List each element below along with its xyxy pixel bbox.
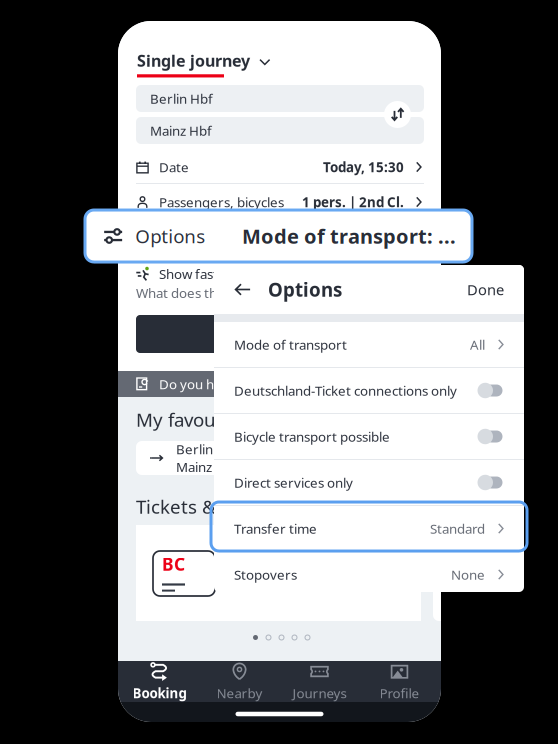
staticText: Profile — [379, 684, 419, 702]
button[interactable]: Options — [118, 221, 441, 253]
button[interactable]: Search — [136, 315, 424, 353]
button[interactable]: Back — [231, 277, 255, 301]
staticText: Berlin Hbf — [150, 90, 213, 107]
button[interactable]: Mode of transport — [214, 322, 524, 367]
staticText: Nearby — [216, 684, 262, 702]
staticText: Show faster connections — [159, 265, 309, 283]
button[interactable]: Stopovers — [214, 552, 524, 597]
staticText: Do you have a BahnCard? — [159, 375, 315, 393]
button[interactable]: Bicycle transport possible — [214, 414, 524, 459]
button[interactable]: Booking — [119, 661, 199, 702]
staticText: Mode of transport: ... — [242, 223, 456, 249]
staticText: Search — [255, 324, 305, 344]
staticText: Done — [467, 280, 504, 299]
staticText: Today, 15:30 — [323, 158, 404, 176]
button[interactable]: Do you have a BahnCard? — [118, 371, 441, 397]
button[interactable]: Show faster connections — [136, 265, 309, 283]
button[interactable]: Nearby — [199, 661, 279, 702]
staticText: Mode of transport: ... — [265, 228, 404, 246]
button[interactable]: Mainz Hbf — [136, 117, 424, 144]
staticText: Transfer time — [234, 520, 317, 537]
staticText: Deutschland-Ticket connections only — [234, 382, 457, 399]
staticText: Mode of transport — [234, 336, 347, 353]
staticText: Single journey — [137, 50, 250, 71]
staticText: Booking — [132, 684, 186, 702]
staticText: Passengers, bicycles — [159, 193, 284, 211]
staticText: Mainz Hbf — [150, 122, 212, 139]
button[interactable]: What does that mean? — [136, 284, 273, 302]
staticText: Stopovers — [234, 566, 297, 583]
button[interactable]: Options — [85, 210, 472, 262]
staticText: BC — [162, 552, 185, 575]
button[interactable]: Profile — [359, 661, 439, 702]
staticText: Journeys — [292, 684, 346, 702]
staticText: Standard — [430, 520, 485, 537]
button[interactable]: Single journey — [137, 50, 271, 77]
button[interactable]: Done — [467, 280, 504, 299]
button[interactable]: Deutschland-Ticket connections only — [214, 368, 524, 413]
staticText: Options — [160, 228, 208, 246]
staticText: 1 pers. | 2nd Cl. — [302, 193, 404, 211]
staticText: Options — [135, 224, 205, 248]
button[interactable]: Passengers, bicycles — [118, 186, 441, 218]
staticText: Direct services only — [234, 474, 353, 491]
button[interactable]: Date — [118, 151, 441, 183]
staticText: Date — [159, 158, 189, 176]
button[interactable]: Journeys — [279, 661, 359, 702]
staticText: Mainz Hbf — [176, 458, 238, 476]
staticText: Berlin Hbf — [176, 440, 239, 458]
button[interactable]: Berlin Hbf — [136, 85, 424, 112]
button[interactable]: Transfer time — [214, 506, 524, 551]
staticText: None — [451, 566, 485, 583]
button[interactable]: Swap stations — [384, 101, 411, 128]
button[interactable]: Direct services only — [214, 460, 524, 505]
staticText: Tickets & offers — [136, 494, 273, 519]
staticText: All — [470, 336, 485, 353]
staticText: Bicycle transport possible — [234, 428, 390, 445]
staticText: My favourites — [136, 407, 256, 432]
staticText: What does that mean? — [136, 284, 273, 302]
button[interactable]: Berlin Hbf — [136, 441, 424, 475]
staticText: Options — [268, 277, 342, 302]
